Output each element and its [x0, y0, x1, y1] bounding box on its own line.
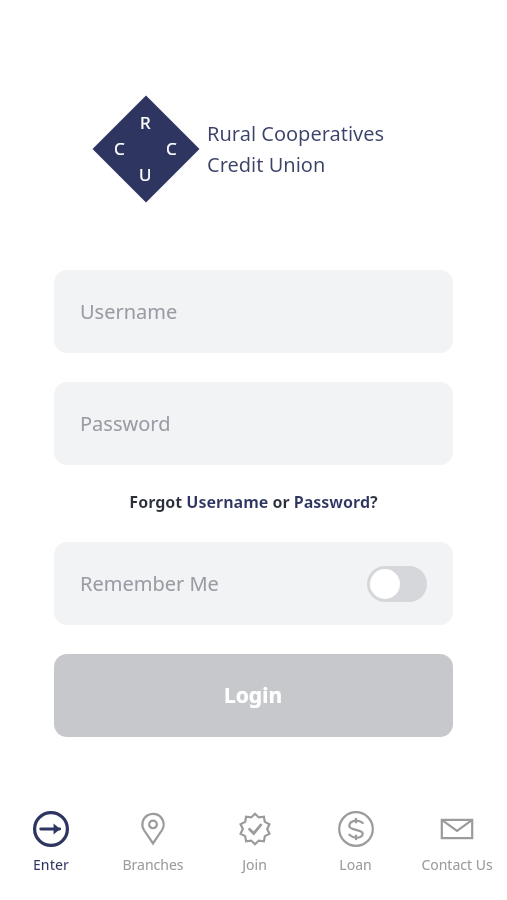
button[interactable]: Login — [54, 654, 453, 737]
staticText: Username — [80, 298, 178, 325]
staticText: Rural Cooperatives — [207, 120, 385, 147]
button[interactable]: Password — [54, 382, 453, 465]
staticText: Forgot Username or Password? — [129, 491, 378, 513]
staticText: U — [139, 163, 152, 186]
button[interactable]: Username — [54, 270, 453, 353]
staticText: C — [166, 137, 177, 160]
staticText: Login — [224, 681, 283, 710]
staticText: R — [140, 111, 151, 134]
button[interactable]: Branches — [102, 792, 204, 892]
button[interactable]: Contact Us — [406, 792, 507, 892]
staticText: Join — [242, 855, 267, 874]
button[interactable]: Join — [204, 792, 305, 892]
staticText: Loan — [339, 855, 372, 874]
staticText: C — [114, 137, 125, 160]
staticText: Contact Us — [421, 855, 493, 874]
staticText: Password — [80, 410, 171, 437]
button[interactable]: Remember Me — [54, 542, 453, 625]
button[interactable]: Enter — [0, 792, 102, 892]
staticText: Branches — [122, 855, 184, 874]
staticText: Remember Me — [80, 570, 219, 597]
staticText: Credit Union — [207, 151, 326, 178]
staticText: Enter — [33, 855, 69, 874]
button[interactable]: Loan — [305, 792, 406, 892]
button[interactable]: Forgot Username or Password? — [0, 491, 507, 513]
